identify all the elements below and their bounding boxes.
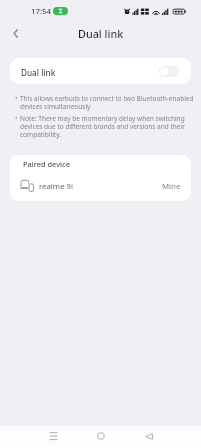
button[interactable]: Back [137,425,161,447]
staticText: Mine [162,181,181,192]
staticText: This allows earbuds to connect to two Bl… [20,94,195,111]
button[interactable]: realme 9i [10,174,191,199]
button[interactable]: Dual link switch [159,66,179,77]
staticText: Note: There may be momentary delay when … [20,114,195,139]
staticText: 17:54 [31,6,51,17]
staticText: Paired device [23,159,70,169]
staticText: Dual link [78,26,124,41]
staticText: realme 9i [39,181,74,192]
button[interactable]: Recents [41,425,65,447]
staticText: Dual link [21,67,56,78]
button[interactable]: Dual link [10,58,191,84]
button[interactable]: Back [3,21,27,45]
button[interactable]: Home [89,425,113,447]
